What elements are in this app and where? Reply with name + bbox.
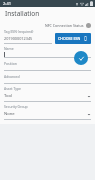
staticText: Advanced (4, 74, 20, 79)
button[interactable]: Name (4, 46, 91, 58)
button[interactable]: Asset Type (4, 86, 91, 102)
staticText: Name (4, 46, 14, 51)
staticText: 2019000012345 (4, 36, 33, 41)
button[interactable]: Security Group (4, 104, 91, 120)
staticText: None (4, 111, 87, 117)
button[interactable]: Advanced (4, 74, 91, 84)
staticText: Asset Type (4, 86, 21, 91)
button[interactable]: Position (4, 61, 91, 71)
staticText: NFC Connection Status (45, 23, 84, 28)
staticText: Security Group (4, 104, 28, 109)
staticText: Tag ESN (required) (4, 29, 34, 34)
button[interactable]: Confirm (74, 51, 88, 65)
staticText: Installation (5, 9, 40, 18)
button[interactable]: CHOOSE ESN (55, 33, 91, 44)
staticText: 2:41 (3, 1, 11, 6)
staticText: CHOOSE ESN (58, 36, 81, 41)
staticText: Position (4, 61, 17, 66)
staticText: Tool (4, 93, 87, 99)
